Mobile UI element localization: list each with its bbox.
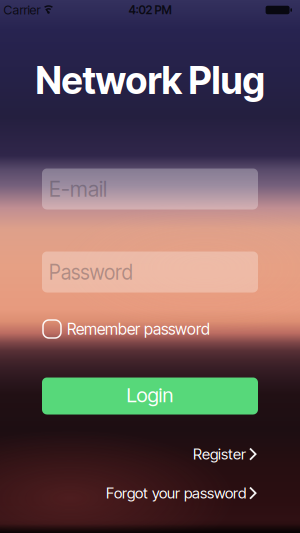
button[interactable]: Remember password (43, 319, 210, 338)
staticText: Network Plug (35, 58, 264, 103)
staticText: Password (49, 259, 140, 285)
staticText: Forgot your password (106, 484, 246, 502)
staticText: Carrier (3, 2, 40, 18)
button[interactable]: Forgot your password (106, 484, 257, 502)
button[interactable]: Password (42, 251, 258, 292)
button[interactable]: E-mail (42, 168, 258, 209)
staticText: E-mail (49, 176, 107, 202)
staticText: Register (193, 445, 246, 463)
button[interactable]: Register (193, 445, 257, 463)
staticText: Remember password (67, 319, 210, 338)
staticText: 4:02 PM (128, 3, 171, 17)
button[interactable]: Login (42, 377, 258, 414)
staticText: Login (126, 383, 173, 407)
